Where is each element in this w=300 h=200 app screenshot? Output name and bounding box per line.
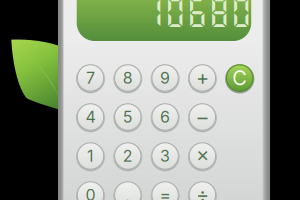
staticText: C <box>232 66 247 90</box>
staticText: 1 <box>87 146 94 166</box>
staticText: 9 <box>160 68 170 88</box>
staticText: 7 <box>86 68 95 88</box>
button[interactable]: + <box>185 60 220 96</box>
button[interactable]: 1 <box>73 138 108 174</box>
staticText: 0 <box>85 185 95 200</box>
staticText: . <box>125 183 131 200</box>
button[interactable]: C <box>222 60 257 96</box>
button[interactable]: . <box>110 177 145 200</box>
button[interactable]: 0 <box>73 177 108 200</box>
staticText: = <box>160 184 171 200</box>
staticText: 10680 <box>142 0 252 30</box>
button[interactable]: 4 <box>73 99 108 135</box>
staticText: + <box>196 66 209 90</box>
staticText: – <box>197 105 207 129</box>
staticText: 8 <box>123 68 133 88</box>
button[interactable]: 6 <box>147 99 183 135</box>
button[interactable]: 2 <box>110 138 145 174</box>
button[interactable]: ✕ <box>185 138 220 174</box>
button[interactable]: 7 <box>73 60 108 96</box>
staticText: 4 <box>85 107 95 127</box>
button[interactable]: = <box>147 177 183 200</box>
button[interactable]: 3 <box>147 138 183 174</box>
staticText: 6 <box>160 107 170 127</box>
button[interactable]: 8 <box>110 60 145 96</box>
staticText: ÷ <box>196 183 209 200</box>
button[interactable]: 5 <box>110 99 145 135</box>
staticText: 2 <box>123 146 133 166</box>
button[interactable]: 9 <box>147 60 183 96</box>
button[interactable]: ÷ <box>185 177 220 200</box>
staticText: 5 <box>123 107 133 127</box>
button[interactable]: – <box>185 99 220 135</box>
staticText: 3 <box>160 146 170 166</box>
staticText: ✕ <box>196 147 209 165</box>
